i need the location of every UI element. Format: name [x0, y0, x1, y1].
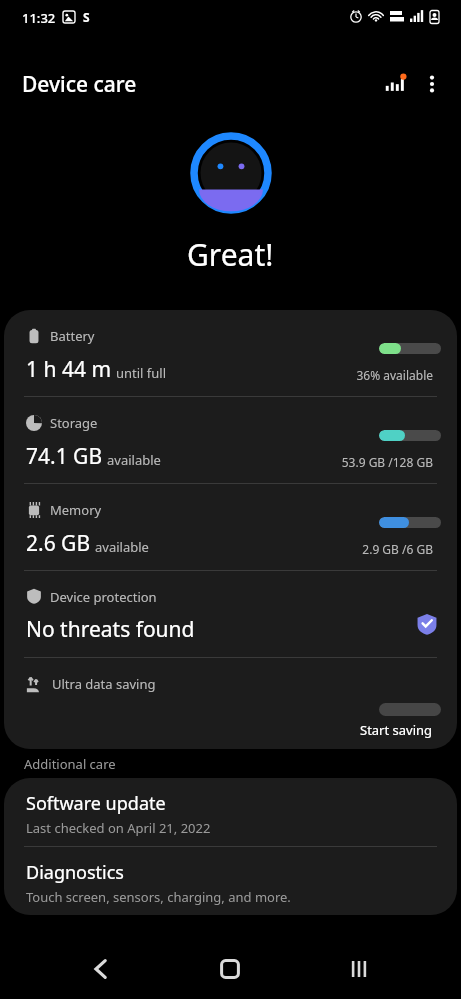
staticText: 2.9 GB /6 GB — [362, 541, 433, 557]
staticText: S — [83, 9, 90, 25]
staticText: 53.9 GB /128 GB — [341, 454, 433, 470]
button[interactable]: Home — [209, 948, 251, 990]
button[interactable]: Diagnostics — [4, 847, 457, 915]
button[interactable]: Usage statistics — [374, 64, 416, 106]
button[interactable]: Battery — [4, 310, 457, 396]
staticText: available — [95, 538, 149, 556]
button[interactable]: Software update — [4, 778, 457, 846]
staticText: Device protection — [50, 588, 157, 606]
staticText: Start saving — [360, 721, 433, 739]
staticText: 2.6 GB — [26, 529, 91, 558]
staticText: Software update — [26, 791, 166, 816]
staticText: available — [107, 451, 161, 469]
staticText: 74.1 GB — [26, 442, 103, 471]
button[interactable]: Device protection — [4, 571, 457, 657]
button[interactable]: Storage — [4, 397, 457, 483]
staticText: Ultra data saving — [52, 675, 156, 693]
button[interactable]: Ultra data saving toggle — [379, 703, 441, 716]
staticText: Last checked on April 21, 2022 — [26, 819, 211, 837]
staticText: Memory — [50, 501, 102, 519]
button[interactable]: Recent apps — [338, 948, 380, 990]
button[interactable]: More options — [412, 64, 452, 104]
staticText: Battery — [50, 327, 95, 345]
staticText: 1 h 44 m — [26, 355, 112, 384]
staticText: Device care — [22, 70, 137, 99]
staticText: Storage — [50, 414, 98, 432]
staticText: 36% available — [356, 367, 433, 383]
staticText: No threats found — [26, 615, 195, 644]
staticText: 11:32 — [22, 9, 56, 27]
button[interactable]: Memory — [4, 484, 457, 570]
staticText: until full — [116, 364, 167, 382]
staticText: Diagnostics — [26, 860, 124, 885]
staticText: Additional care — [24, 755, 116, 773]
button[interactable]: Back — [80, 948, 122, 990]
staticText: Great! — [187, 234, 274, 275]
staticText: Touch screen, sensors, charging, and mor… — [26, 888, 291, 906]
button[interactable]: Ultra data saving — [4, 658, 457, 749]
